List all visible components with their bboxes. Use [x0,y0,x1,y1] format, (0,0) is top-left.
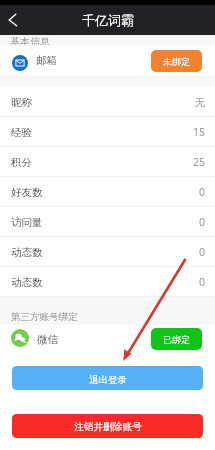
button[interactable]: 注销并删除账号 [12,414,203,438]
button[interactable]: 微信 [0,325,215,353]
staticText: 经验 [11,126,32,139]
staticText: 0 [199,275,206,289]
staticText: 未绑定 [163,56,190,67]
button[interactable]: 邮箱 [0,46,215,75]
button[interactable]: 未绑定 [151,50,202,72]
button[interactable]: 访问量 [0,207,215,237]
staticText: 千亿词霸 [82,12,134,28]
button[interactable]: 昵称 [0,87,215,117]
staticText: 好友数 [11,186,43,199]
button[interactable]: 动态数 [0,237,215,267]
staticText: 25 [193,155,206,169]
staticText: 访问量 [11,216,43,229]
staticText: 0 [199,185,206,199]
staticText: 邮箱 [36,54,57,67]
staticText: 动态数 [11,276,43,289]
staticText: 积分 [11,156,32,169]
staticText: 第三方账号绑定 [11,311,78,323]
staticText: 微信 [37,333,58,346]
button[interactable]: 动态数 [0,267,215,297]
button[interactable]: 已绑定 [151,328,202,350]
staticText: 无 [195,96,206,109]
staticText: 动态数 [11,246,43,259]
staticText: 退出登录 [89,374,127,386]
staticText: 注销并删除账号 [74,421,142,433]
staticText: 0 [199,215,206,229]
button[interactable]: 经验 [0,117,215,147]
staticText: 已绑定 [163,334,190,345]
button[interactable]: 好友数 [0,177,215,207]
button[interactable]: Back [0,8,25,33]
button[interactable]: 退出登录 [12,366,203,390]
staticText: 0 [199,245,206,259]
staticText: 15 [193,125,206,139]
staticText: 昵称 [11,96,32,109]
staticText: 基本信息 [10,35,50,45]
button[interactable]: 积分 [0,147,215,177]
